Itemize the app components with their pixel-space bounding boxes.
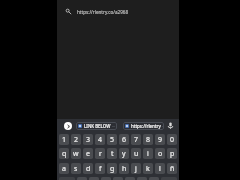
staticText: w [73,149,79,159]
button[interactable]: l [155,163,165,174]
button[interactable]: https://rlentry [123,122,164,130]
button[interactable]: 2 [71,134,81,145]
staticText: 8 [146,135,151,145]
button[interactable]: m [149,177,159,180]
staticText: o [158,149,163,159]
button[interactable]: k [143,163,153,174]
button[interactable]: p [167,148,177,159]
staticText: 9 [158,135,163,145]
button[interactable]: e [83,148,93,159]
staticText: 3 [86,135,91,145]
button[interactable]: b [125,177,135,180]
button[interactable]: h [119,163,129,174]
staticText: 4 [98,135,103,145]
button[interactable]: q [59,148,69,159]
button[interactable]: ñ [167,163,177,174]
staticText: 5 [110,135,115,145]
staticText: s [74,164,78,174]
button[interactable]: 9 [155,134,165,145]
button[interactable]: 0 [167,134,177,145]
button[interactable]: t [107,148,117,159]
button[interactable]: s [71,163,81,174]
button[interactable]: z [77,177,87,180]
staticText: i [147,149,149,159]
button[interactable]: r [95,148,105,159]
staticText: y [122,149,126,159]
button[interactable]: More suggestions [64,122,72,130]
staticText: h [122,164,127,174]
button[interactable]: j [131,163,141,174]
button[interactable]: o [155,148,165,159]
staticText: ñ [170,164,175,174]
staticText: 7 [134,135,139,145]
staticText: 1 [62,135,67,145]
button[interactable]: i [143,148,153,159]
button[interactable]: 6 [119,134,129,145]
staticText: ... [162,123,164,129]
button[interactable]: c [101,177,111,180]
staticText: j [135,164,137,174]
button[interactable]: v [113,177,123,180]
staticText: 2 [74,135,79,145]
staticText: d [86,164,91,174]
button[interactable]: https://rlentry.co/a2968 [57,0,179,24]
staticText: p [170,149,175,159]
staticText: g [110,164,115,174]
button[interactable]: 7 [131,134,141,145]
button[interactable]: 3 [83,134,93,145]
staticText: https://rlentry [131,123,161,129]
button[interactable]: w [71,148,81,159]
button[interactable]: g [107,163,117,174]
staticText: e [86,149,90,159]
staticText: 0 [170,135,175,145]
staticText: r [99,149,102,159]
button[interactable]: n [137,177,147,180]
staticText: ... [112,123,116,129]
button[interactable]: f [95,163,105,174]
button[interactable]: LINK BELOW [76,122,117,130]
staticText: https://rlentry.co/a2968 [77,9,129,15]
button[interactable]: d [83,163,93,174]
button[interactable]: 4 [95,134,105,145]
button[interactable]: Voice input [166,121,175,130]
button[interactable]: a [59,163,69,174]
button[interactable]: 8 [143,134,153,145]
staticText: q [62,149,67,159]
staticText: t [111,149,114,159]
staticText: 6 [122,135,127,145]
button[interactable]: 1 [59,134,69,145]
staticText: l [159,164,161,174]
staticText: f [99,164,102,174]
button[interactable]: y [119,148,129,159]
button[interactable]: x [89,177,99,180]
staticText: k [146,164,150,174]
button[interactable]: u [131,148,141,159]
staticText: LINK BELOW [84,123,111,129]
staticText: u [134,149,139,159]
button[interactable]: 5 [107,134,117,145]
staticText: a [62,164,66,174]
